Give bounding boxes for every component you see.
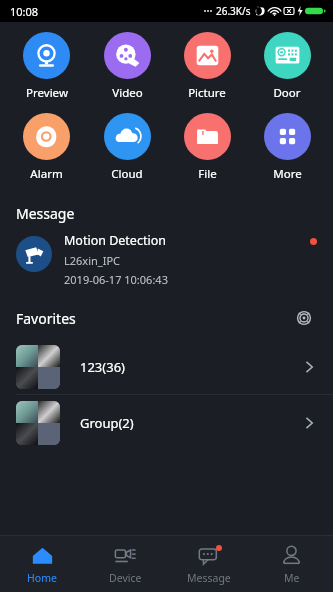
staticText: 26.3K/s [216,4,251,18]
button[interactable]: Device [84,536,167,592]
button[interactable]: File [167,109,247,186]
staticText: 10:08 [10,4,39,19]
button[interactable]: Home [0,536,84,592]
button[interactable]: Message [167,536,250,592]
staticText: Message [16,204,75,223]
button[interactable]: 123(36) [0,339,333,394]
staticText: Cloud [111,166,143,182]
button[interactable]: Favorites settings [291,305,317,331]
button[interactable]: Cloud [87,109,167,186]
staticText: Home [27,571,57,585]
staticText: Group(2) [80,414,301,432]
staticText: Message [187,571,231,585]
staticText: 2019-06-17 10:06:43 [64,272,168,287]
staticText: More [273,166,302,182]
staticText: 123(36) [80,358,301,376]
staticText: Device [109,571,142,585]
button[interactable]: More [247,109,327,186]
button[interactable]: Group(2) [0,395,333,450]
button[interactable]: Alarm [6,109,87,186]
staticText: Video [112,85,143,101]
button[interactable]: Video [87,28,167,105]
button[interactable]: Preview [6,28,87,105]
staticText: Alarm [30,166,63,182]
button[interactable]: Picture [167,28,247,105]
button[interactable]: Door [247,28,327,105]
staticText: L26xin_IPC [64,253,121,268]
staticText: File [198,166,217,182]
staticText: Me [284,571,300,585]
staticText: Motion Detection [64,232,166,249]
staticText: Door [273,85,301,101]
staticText: Preview [26,85,68,101]
button[interactable]: Me [250,536,333,592]
button[interactable]: Motion Detection [0,230,333,293]
staticText: Picture [188,85,226,101]
staticText: Favorites [16,309,76,328]
